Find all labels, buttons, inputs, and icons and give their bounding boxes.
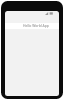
- staticText: Hello World App: [23, 23, 49, 28]
